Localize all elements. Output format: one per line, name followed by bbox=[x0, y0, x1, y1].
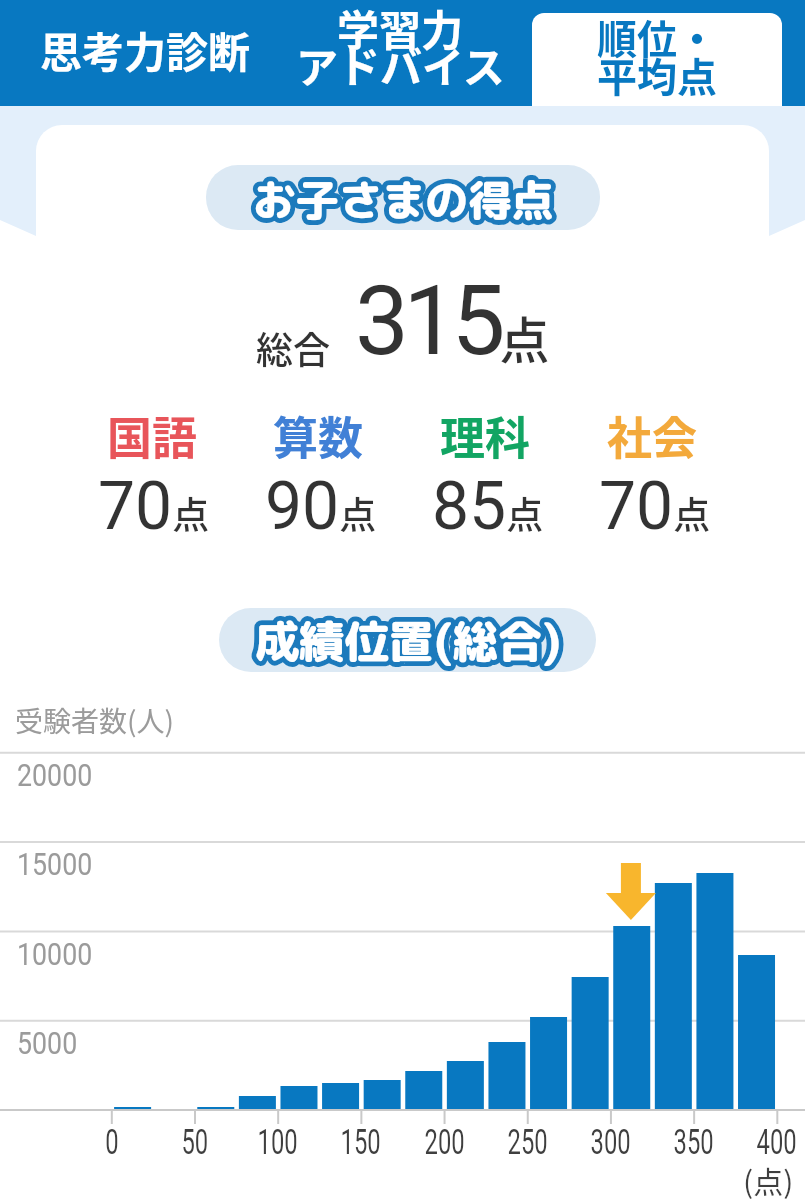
staticText: 400 bbox=[757, 1122, 797, 1163]
staticText: 受験者数(人) bbox=[15, 700, 174, 741]
staticText: 総合 315点 bbox=[256, 265, 550, 378]
staticText: 国語 bbox=[107, 403, 198, 468]
staticText: 成績位置(総合) bbox=[254, 610, 562, 672]
staticText: 思考力診断 bbox=[40, 19, 251, 80]
staticText: 85点 bbox=[432, 468, 544, 545]
button[interactable]: 学習力 bbox=[288, 0, 513, 106]
staticText: 50 bbox=[181, 1122, 209, 1163]
staticText: 学習力 bbox=[337, 0, 464, 58]
staticText: アドバイス bbox=[296, 34, 505, 95]
staticText: お子さまの得点 bbox=[253, 170, 554, 230]
staticText: 300 bbox=[591, 1122, 631, 1163]
button[interactable]: 思考力診断 bbox=[28, 0, 263, 106]
staticText: 成績位置(総合) bbox=[254, 610, 562, 672]
staticText: 100 bbox=[258, 1122, 298, 1163]
staticText: お子さまの得点 bbox=[253, 170, 554, 230]
staticText: 算数 bbox=[273, 403, 364, 468]
staticText: 70点 bbox=[599, 468, 711, 545]
staticText: 5000 bbox=[17, 1025, 77, 1062]
staticText: 200 bbox=[425, 1122, 465, 1163]
staticText: 250 bbox=[508, 1122, 548, 1163]
staticText: 70点 bbox=[98, 468, 210, 545]
staticText: 平均点 bbox=[597, 46, 717, 104]
staticText: 社会 bbox=[607, 403, 698, 468]
button[interactable]: 順位・ bbox=[532, 13, 782, 106]
staticText: 順位・ bbox=[597, 13, 717, 66]
staticText: 150 bbox=[341, 1122, 381, 1163]
staticText: 15000 bbox=[17, 846, 93, 883]
staticText: 90点 bbox=[265, 468, 377, 545]
staticText: 0 bbox=[105, 1122, 119, 1163]
staticText: (点) bbox=[743, 1158, 794, 1200]
staticText: 理科 bbox=[440, 403, 531, 468]
staticText: 350 bbox=[674, 1122, 714, 1163]
staticText: 20000 bbox=[17, 757, 93, 794]
staticText: 10000 bbox=[17, 936, 93, 973]
